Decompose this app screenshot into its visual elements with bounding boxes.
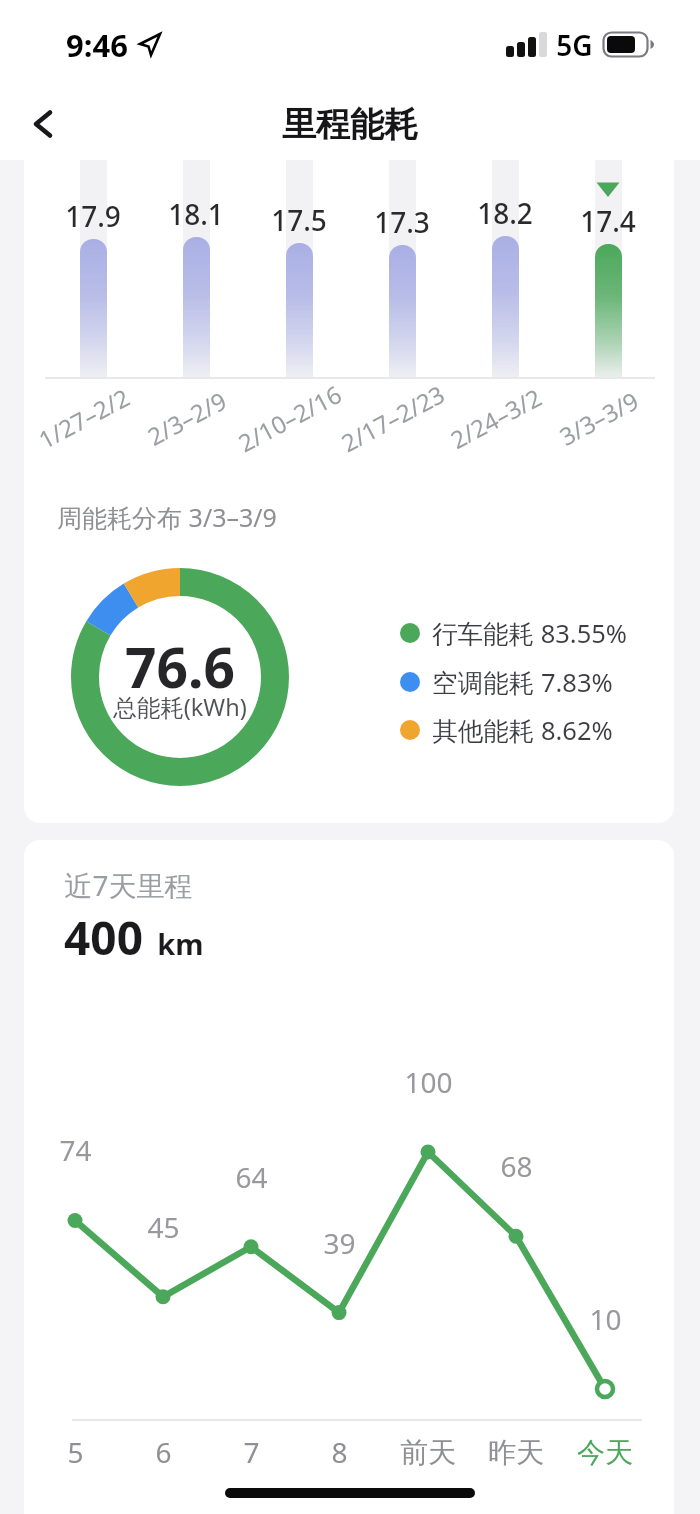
staticText: km bbox=[157, 924, 204, 963]
staticText: 10 bbox=[589, 1300, 622, 1338]
staticText: 其他能耗 8.62% bbox=[432, 713, 613, 748]
staticText: 今天 bbox=[577, 1435, 633, 1470]
staticText: 总能耗(kWh) bbox=[113, 691, 247, 723]
staticText: 6 bbox=[155, 1433, 172, 1471]
staticText: 17.3 bbox=[374, 203, 430, 241]
staticText: 45 bbox=[147, 1208, 180, 1246]
staticText: 7 bbox=[243, 1433, 260, 1471]
staticText: 68 bbox=[500, 1147, 533, 1185]
staticText: 100 bbox=[404, 1063, 453, 1101]
staticText: 400 bbox=[64, 906, 143, 969]
staticText: 2/10–2/16 bbox=[232, 377, 347, 459]
staticText: 3/3–3/9 bbox=[553, 384, 644, 453]
staticText: 前天 bbox=[400, 1435, 456, 1470]
staticText: 昨天 bbox=[488, 1435, 544, 1470]
staticText: 9:46 bbox=[66, 24, 128, 66]
button[interactable] bbox=[16, 96, 72, 152]
staticText: 64 bbox=[235, 1158, 268, 1196]
staticText: 17.5 bbox=[271, 201, 327, 239]
staticText: 8 bbox=[331, 1433, 348, 1471]
staticText: 周能耗分布 3/3–3/9 bbox=[57, 500, 277, 534]
staticText: 18.1 bbox=[168, 195, 224, 233]
staticText: 1/27–2/2 bbox=[32, 380, 135, 456]
staticText: 5 bbox=[67, 1433, 84, 1471]
staticText: 里程能耗 bbox=[282, 103, 418, 146]
staticText: 74 bbox=[59, 1131, 92, 1169]
staticText: 76.6 bbox=[125, 629, 235, 689]
staticText: 2/24–3/2 bbox=[444, 380, 547, 456]
staticText: 5G bbox=[556, 26, 593, 64]
staticText: 近7天里程 bbox=[64, 866, 193, 904]
staticText: 39 bbox=[323, 1224, 356, 1262]
staticText: 2/17–2/23 bbox=[335, 377, 450, 459]
staticText: 2/3–2/9 bbox=[141, 384, 232, 453]
staticText: 17.9 bbox=[65, 197, 121, 235]
staticText: 空调能耗 7.83% bbox=[432, 665, 613, 700]
staticText: 17.4 bbox=[580, 202, 636, 240]
staticText: 行车能耗 83.55% bbox=[432, 616, 627, 651]
staticText: 18.2 bbox=[477, 194, 533, 232]
